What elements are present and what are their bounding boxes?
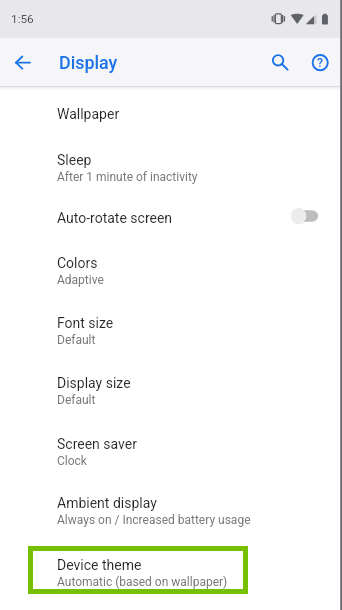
staticText: Default <box>57 333 96 347</box>
staticText: ? <box>317 55 324 70</box>
staticText: Ambient display <box>57 495 157 511</box>
button[interactable]: Wallpaper <box>0 87 342 133</box>
staticText: Display <box>59 52 118 73</box>
button[interactable]: Sleep <box>0 133 342 193</box>
button[interactable]: Auto-rotate screen toggle <box>291 205 320 227</box>
button[interactable]: Help <box>302 45 338 81</box>
staticText: Sleep <box>57 152 92 168</box>
staticText: Default <box>57 393 96 407</box>
button[interactable]: Ambient display <box>0 479 342 539</box>
button[interactable]: Colors <box>0 239 342 299</box>
staticText: Wallpaper <box>57 106 120 122</box>
button[interactable]: Display size <box>0 359 342 419</box>
staticText: 1:56 <box>11 12 34 26</box>
staticText: Font size <box>57 315 114 331</box>
staticText: Clock <box>57 454 87 468</box>
staticText: After 1 minute of inactivity <box>57 170 198 184</box>
button[interactable]: Screen saver <box>0 419 342 479</box>
staticText: Colors <box>57 255 98 271</box>
staticText: Automatic (based on wallpaper) <box>57 575 228 589</box>
staticText: Display size <box>57 375 131 391</box>
staticText: Screen saver <box>57 436 137 452</box>
button[interactable]: Search <box>260 45 296 81</box>
button[interactable]: Font size <box>0 299 342 359</box>
button[interactable]: Back <box>7 47 39 79</box>
button[interactable]: Device theme <box>0 539 342 599</box>
staticText: Adaptive <box>57 273 104 287</box>
staticText: Device theme <box>57 557 142 573</box>
button[interactable]: Auto-rotate screen <box>0 193 342 239</box>
staticText: Always on / Increased battery usage <box>57 513 251 527</box>
staticText: Auto-rotate screen <box>57 210 173 226</box>
